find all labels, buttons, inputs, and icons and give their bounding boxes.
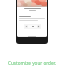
staticText: Customize your order. bbox=[2, 60, 62, 66]
button[interactable]: Decrease quantity bbox=[24, 24, 41, 29]
button[interactable]: Customize your order. bbox=[2, 60, 62, 66]
button[interactable]: Increase quantity bbox=[37, 25, 40, 28]
button[interactable]: Decrease quantity bbox=[25, 25, 28, 28]
